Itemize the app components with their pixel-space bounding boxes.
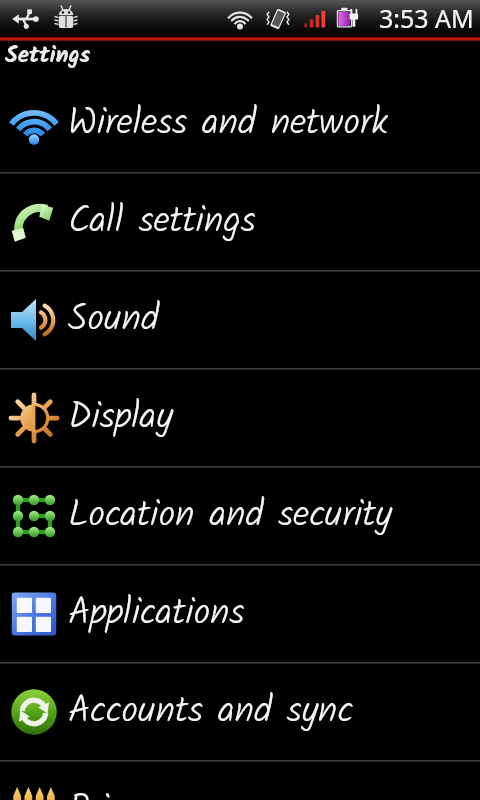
staticText: Location and security	[68, 487, 392, 546]
staticText: 3:53 AM	[379, 1, 474, 35]
staticText: Applications	[68, 585, 245, 644]
button[interactable]: Wireless and network	[0, 76, 480, 172]
button[interactable]: Privacy	[0, 762, 480, 800]
button[interactable]: Sound	[0, 272, 480, 368]
button[interactable]: Location and security	[0, 468, 480, 564]
button[interactable]: Accounts and sync	[0, 664, 480, 760]
staticText: Privacy	[68, 781, 173, 800]
staticText: Wireless and network	[68, 95, 389, 154]
staticText: Sound	[68, 291, 159, 350]
staticText: Settings	[5, 38, 91, 73]
staticText: Accounts and sync	[68, 683, 354, 742]
staticText: Display	[68, 389, 173, 448]
button[interactable]: Applications	[0, 566, 480, 662]
button[interactable]: Display	[0, 370, 480, 466]
staticText: Call settings	[68, 193, 256, 252]
button[interactable]: Call settings	[0, 174, 480, 270]
